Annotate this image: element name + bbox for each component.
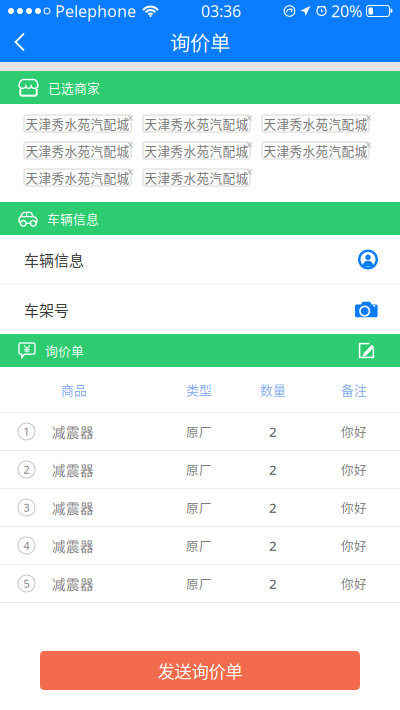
- staticText: 2: [269, 499, 277, 516]
- staticText: ×: [127, 137, 134, 153]
- staticText: ×: [246, 164, 253, 180]
- button[interactable]: 天津秀水苑汽配城: [24, 137, 134, 159]
- button[interactable]: 2: [0, 451, 400, 489]
- staticText: ×: [246, 110, 253, 126]
- staticText: 类型: [186, 380, 212, 399]
- staticText: 2: [269, 575, 277, 592]
- staticText: 减震器: [52, 422, 94, 441]
- staticText: 天津秀水苑汽配城: [263, 141, 367, 160]
- staticText: 天津秀水苑汽配城: [144, 141, 248, 160]
- staticText: 1: [23, 424, 29, 439]
- staticText: 原厂: [186, 422, 212, 441]
- button[interactable]: 天津秀水苑汽配城: [262, 110, 372, 132]
- staticText: 原厂: [186, 536, 212, 555]
- staticText: 车辆信息: [24, 249, 84, 270]
- staticText: 减震器: [52, 536, 94, 555]
- button[interactable]: 车辆信息: [0, 235, 400, 284]
- staticText: 原厂: [186, 498, 212, 517]
- staticText: 已选商家: [48, 78, 100, 97]
- staticText: 减震器: [52, 460, 94, 479]
- staticText: 5: [23, 576, 29, 591]
- button[interactable]: 天津秀水苑汽配城: [143, 137, 253, 159]
- staticText: 询价单: [45, 341, 84, 360]
- button[interactable]: Back: [0, 22, 42, 61]
- staticText: 天津秀水苑汽配城: [25, 114, 129, 133]
- button[interactable]: 天津秀水苑汽配城: [262, 137, 372, 159]
- staticText: 原厂: [186, 574, 212, 593]
- staticText: 车架号: [24, 299, 69, 320]
- staticText: 20%: [331, 0, 362, 22]
- staticText: 4: [23, 538, 29, 553]
- staticText: 2: [269, 537, 277, 554]
- staticText: 你好: [341, 536, 367, 555]
- button[interactable]: 天津秀水苑汽配城: [143, 164, 253, 186]
- staticText: 备注: [341, 380, 367, 399]
- button[interactable]: 天津秀水苑汽配城: [143, 110, 253, 132]
- staticText: 03:36: [201, 0, 241, 22]
- staticText: 你好: [341, 574, 367, 593]
- staticText: ×: [127, 110, 134, 126]
- staticText: 你好: [341, 422, 367, 441]
- staticText: 车辆信息: [47, 209, 99, 228]
- button[interactable]: 3: [0, 489, 400, 527]
- staticText: 天津秀水苑汽配城: [25, 141, 129, 160]
- staticText: 减震器: [52, 574, 94, 593]
- button[interactable]: 车架号: [0, 285, 400, 334]
- staticText: 询价单: [170, 27, 230, 57]
- staticText: 2: [23, 462, 29, 477]
- staticText: 2: [269, 423, 277, 440]
- button[interactable]: Edit: [358, 342, 375, 359]
- staticText: 减震器: [52, 498, 94, 517]
- staticText: 3: [23, 500, 29, 515]
- staticText: 商品: [61, 380, 87, 399]
- staticText: Pelephone: [55, 0, 136, 22]
- button[interactable]: 1: [0, 413, 400, 451]
- staticText: ×: [365, 110, 372, 126]
- button[interactable]: 天津秀水苑汽配城: [24, 110, 134, 132]
- staticText: 2: [269, 461, 277, 478]
- button[interactable]: 5: [0, 565, 400, 603]
- button[interactable]: 发送询价单: [40, 651, 360, 690]
- staticText: 天津秀水苑汽配城: [144, 168, 248, 187]
- staticText: ×: [365, 137, 372, 153]
- staticText: 原厂: [186, 460, 212, 479]
- staticText: 天津秀水苑汽配城: [144, 114, 248, 133]
- staticText: ×: [246, 137, 253, 153]
- staticText: 天津秀水苑汽配城: [263, 114, 367, 133]
- staticText: ×: [127, 164, 134, 180]
- staticText: 数量: [260, 380, 286, 399]
- staticText: 你好: [341, 460, 367, 479]
- staticText: 发送询价单: [157, 658, 242, 683]
- staticText: 你好: [341, 498, 367, 517]
- button[interactable]: 4: [0, 527, 400, 565]
- staticText: 天津秀水苑汽配城: [25, 168, 129, 187]
- button[interactable]: 天津秀水苑汽配城: [24, 164, 134, 186]
